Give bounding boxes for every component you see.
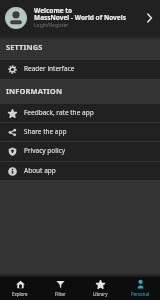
button[interactable]: About app	[0, 162, 160, 180]
button[interactable]: Reader interface	[0, 60, 160, 79]
button[interactable]: Feedback, rate the app	[0, 104, 160, 122]
staticText: Library	[93, 291, 108, 297]
staticText: Reader interface	[24, 64, 75, 73]
staticText: Feedback, rate the app	[24, 108, 94, 117]
button[interactable]: Filter	[40, 277, 80, 300]
staticText: Filter	[55, 291, 66, 297]
button[interactable]: Library	[80, 277, 120, 300]
button[interactable]: Personal	[120, 277, 160, 300]
staticText: Login/Register	[34, 22, 69, 29]
staticText: About app	[24, 166, 56, 175]
staticText: MassNovel - World of Novels	[34, 13, 126, 22]
staticText: Personal	[131, 291, 150, 297]
staticText: Welcome to	[34, 6, 73, 15]
button[interactable]: Welcome to	[0, 0, 160, 36]
staticText: Explore	[12, 291, 28, 297]
staticText: Privacy policy	[24, 146, 66, 155]
staticText: INFORMATION	[6, 86, 63, 96]
staticText: Share the app	[24, 127, 67, 136]
button[interactable]: Explore	[0, 277, 40, 300]
button[interactable]: Open account	[143, 12, 155, 24]
button[interactable]: Privacy policy	[0, 142, 160, 161]
staticText: SETTINGS	[6, 42, 43, 52]
button[interactable]: Share the app	[0, 123, 160, 141]
